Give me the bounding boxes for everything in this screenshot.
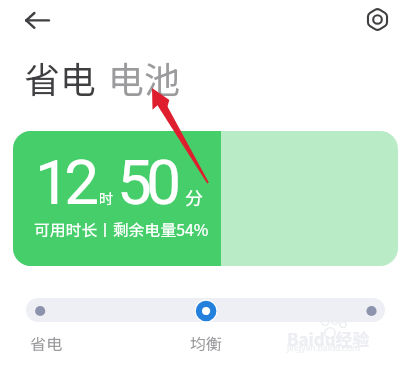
staticText: 12 <box>35 146 94 219</box>
staticText: 50 <box>117 146 176 219</box>
button[interactable]: 均衡 <box>190 331 223 354</box>
button[interactable]: 省电 <box>24 51 97 103</box>
staticText: 时 <box>99 188 113 208</box>
button[interactable]: 省电 <box>30 331 63 354</box>
staticText: 省电 <box>30 331 63 354</box>
staticText: 电池 <box>108 51 181 103</box>
button[interactable]: Settings <box>362 3 394 35</box>
staticText: 均衡 <box>190 331 223 354</box>
staticText: 分 <box>185 184 203 210</box>
button[interactable]: 电池 <box>108 51 181 103</box>
staticText: Baidu经验 <box>287 326 370 351</box>
staticText: 省电 <box>24 51 97 103</box>
staticText: 可用时长丨剩余电量54% <box>34 218 209 241</box>
button[interactable]: Power mode slider <box>26 298 385 322</box>
staticText: jingyan.baidu.com <box>287 343 361 354</box>
button[interactable]: 12 <box>13 131 398 266</box>
button[interactable]: Back <box>20 5 52 37</box>
